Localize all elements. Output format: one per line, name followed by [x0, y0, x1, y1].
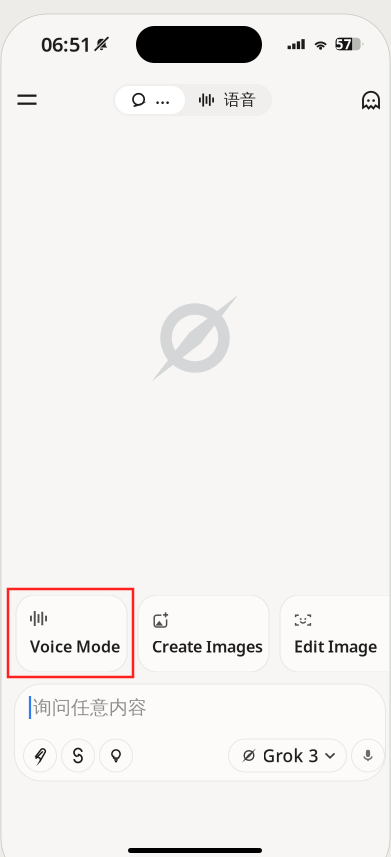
- button[interactable]: Edit Image: [280, 595, 391, 672]
- staticText: 57: [336, 35, 352, 53]
- button[interactable]: 语音: [185, 86, 270, 114]
- button[interactable]: Private chat: [351, 80, 391, 120]
- button[interactable]: Voice Mode: [16, 595, 127, 672]
- staticText: Edit Image: [294, 636, 377, 657]
- button[interactable]: Grok 3: [228, 739, 346, 772]
- staticText: Create Images: [152, 636, 263, 657]
- button[interactable]: Menu: [7, 80, 47, 120]
- button[interactable]: Create Images: [138, 595, 269, 672]
- staticText: 语音: [224, 90, 256, 110]
- button[interactable]: Chat: [115, 86, 185, 114]
- button[interactable]: Attach: [23, 739, 56, 772]
- button[interactable]: Think: [99, 739, 132, 772]
- button[interactable]: Voice input: [351, 739, 384, 772]
- staticText: 06:51: [41, 31, 91, 57]
- staticText: Voice Mode: [30, 636, 120, 657]
- staticText: Grok 3: [262, 744, 318, 767]
- button[interactable]: DeepSearch: [61, 739, 94, 772]
- staticText: 询问任意内容: [33, 696, 147, 719]
